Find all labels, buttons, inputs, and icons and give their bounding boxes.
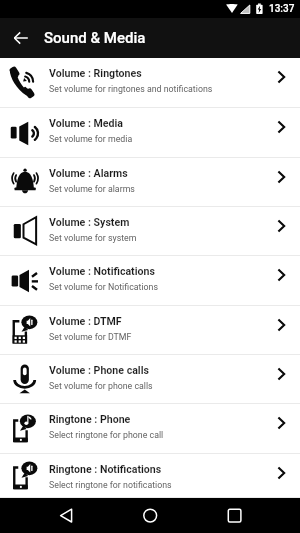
staticText: Volume : Notifications <box>49 265 155 277</box>
button[interactable]: Navigate up <box>0 18 42 58</box>
button[interactable]: Volume : DTMF <box>0 306 300 355</box>
staticText: Volume : Phone calls <box>49 364 149 376</box>
button[interactable]: Recents <box>213 498 257 533</box>
other: Open <box>275 70 289 84</box>
button[interactable]: Volume : Alarms <box>0 158 300 207</box>
staticText: Set volume for media <box>49 134 133 144</box>
staticText: Set volume for system <box>49 233 137 243</box>
button[interactable]: Ringtone : Phone <box>0 404 300 454</box>
staticText: Volume : DTMF <box>49 315 122 327</box>
staticText: Set volume for DTMF <box>49 332 132 342</box>
other: Open <box>275 120 289 134</box>
staticText: Select ringtone for phone call <box>49 430 164 440</box>
button[interactable]: Ringtone : Notifications <box>0 454 300 498</box>
other: Open <box>275 170 289 184</box>
other: Open <box>275 416 289 430</box>
staticText: Volume : System <box>49 216 130 228</box>
other: Open <box>275 219 289 233</box>
staticText: Sound & Media <box>44 29 146 47</box>
other: Open <box>275 318 289 332</box>
staticText: Set volume for Notifications <box>49 282 158 292</box>
staticText: Volume : Alarms <box>49 167 128 179</box>
other: Open <box>275 367 289 381</box>
staticText: Volume : Ringtones <box>49 67 142 79</box>
button[interactable]: Volume : System <box>0 207 300 256</box>
staticText: Select ringtone for notifications <box>49 480 172 490</box>
staticText: Ringtone : Notifications <box>49 463 162 475</box>
button[interactable]: Volume : Ringtones <box>0 58 300 108</box>
staticText: Volume : Media <box>49 117 124 129</box>
other: Open <box>275 268 289 282</box>
button[interactable]: Home <box>128 498 172 533</box>
staticText: Ringtone : Phone <box>49 413 131 425</box>
staticText: Set volume for ringtones and notificatio… <box>49 84 213 94</box>
button[interactable]: Back <box>46 498 90 533</box>
other: Open <box>275 466 289 480</box>
button[interactable]: Volume : Phone calls <box>0 355 300 404</box>
button[interactable]: Volume : Notifications <box>0 256 300 306</box>
staticText: Set volume for phone calls <box>49 381 153 391</box>
button[interactable]: Volume : Media <box>0 108 300 158</box>
staticText: Set volume for alarms <box>49 184 135 194</box>
staticText: 13:37 <box>269 3 295 15</box>
